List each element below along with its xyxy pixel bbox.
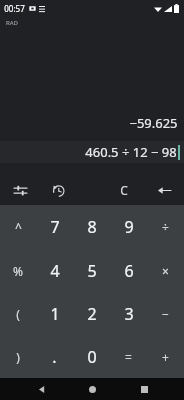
staticText: ^ (15, 219, 22, 235)
staticText: 7 (50, 216, 60, 238)
staticText: 3 (124, 303, 134, 325)
button[interactable]: Toggle degrees or radians (8, 178, 32, 202)
staticText: 460.5 ÷ 12 − 98 (85, 143, 177, 161)
staticText: 00:57 (4, 3, 25, 14)
staticText: = (125, 349, 132, 365)
button[interactable]: 4 (36, 249, 73, 292)
button[interactable]: Back (30, 378, 52, 400)
button[interactable]: Backspace (152, 178, 176, 202)
button[interactable]: . (36, 335, 73, 378)
button[interactable]: C (112, 178, 136, 202)
button[interactable]: Home (81, 378, 103, 400)
staticText: 0 (87, 346, 97, 368)
button[interactable]: Recent apps (133, 378, 155, 400)
staticText: ÷ (162, 219, 169, 235)
button[interactable]: 2 (73, 292, 110, 335)
staticText: −59.625 (129, 114, 178, 132)
button[interactable]: ^ (0, 205, 36, 249)
staticText: × (162, 263, 169, 279)
button[interactable]: − (147, 292, 184, 335)
button[interactable]: = (110, 335, 147, 378)
button[interactable]: ( (0, 292, 36, 335)
button[interactable]: ÷ (147, 205, 184, 249)
button[interactable]: + (147, 335, 184, 378)
staticText: ( (16, 306, 20, 322)
button[interactable]: 5 (73, 249, 110, 292)
staticText: % (13, 263, 23, 279)
button[interactable]: × (147, 249, 184, 292)
staticText: 4 (50, 260, 60, 282)
button[interactable]: 3 (110, 292, 147, 335)
staticText: 1 (50, 303, 60, 325)
staticText: 9 (124, 216, 134, 238)
button[interactable]: 8 (73, 205, 110, 249)
staticText: RAD (6, 19, 18, 27)
button[interactable]: History (46, 178, 70, 202)
button[interactable]: 6 (110, 249, 147, 292)
staticText: − (162, 306, 169, 322)
staticText: 8 (87, 216, 97, 238)
button[interactable]: 9 (110, 205, 147, 249)
button[interactable]: % (0, 249, 36, 292)
staticText: + (162, 349, 169, 365)
staticText: . (52, 346, 57, 368)
staticText: C (120, 182, 128, 198)
staticText: 5 (87, 260, 97, 282)
button[interactable]: 1 (36, 292, 73, 335)
button[interactable]: 0 (73, 335, 110, 378)
button[interactable]: 7 (36, 205, 73, 249)
button[interactable]: ) (0, 335, 36, 378)
staticText: ) (16, 349, 20, 365)
staticText: 2 (87, 303, 97, 325)
staticText: 6 (124, 260, 134, 282)
